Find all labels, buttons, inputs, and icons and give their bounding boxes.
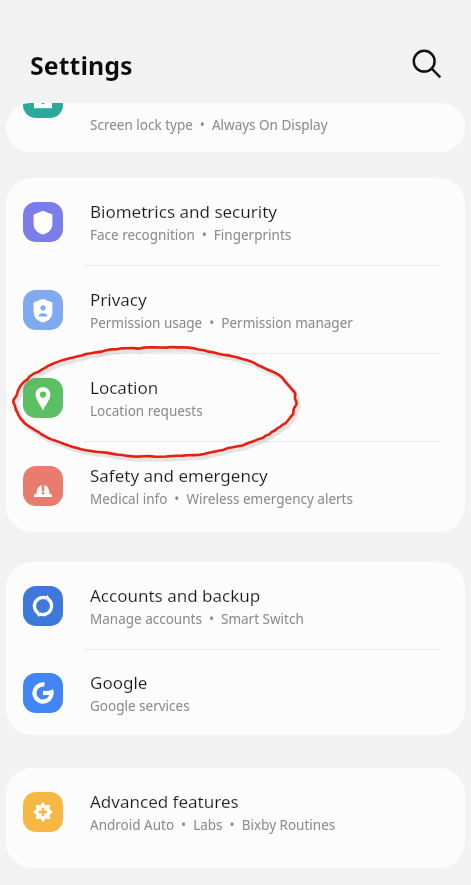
staticText: Google services	[90, 697, 190, 715]
staticText: Google	[90, 671, 148, 694]
button[interactable]: Biometrics and security	[6, 178, 465, 265]
staticText: Settings	[30, 48, 133, 82]
staticText: Advanced features	[90, 790, 239, 813]
staticText: Android Auto • Labs • Bixby Routines	[90, 816, 336, 834]
staticText: Location	[90, 376, 159, 399]
staticText: Manage accounts • Smart Switch	[90, 610, 304, 628]
button[interactable]: Privacy	[6, 266, 465, 353]
button[interactable]: Accounts and backup	[6, 562, 465, 649]
button[interactable]: Location	[6, 354, 465, 441]
staticText: Face recognition • Fingerprints	[90, 226, 292, 244]
staticText: Privacy	[90, 288, 147, 311]
button[interactable]: Safety and emergency	[6, 442, 465, 529]
staticText: Permission usage • Permission manager	[90, 314, 353, 332]
staticText: Screen lock type • Always On Display	[90, 116, 328, 134]
button[interactable]: Advanced features	[6, 768, 465, 855]
button[interactable]: Search	[404, 41, 448, 85]
staticText: Medical info • Wireless emergency alerts	[90, 490, 353, 508]
staticText: Safety and emergency	[90, 464, 268, 487]
staticText: Location requests	[90, 402, 203, 420]
staticText: Accounts and backup	[90, 584, 261, 607]
button[interactable]: Google	[6, 650, 465, 735]
staticText: Biometrics and security	[90, 200, 277, 223]
